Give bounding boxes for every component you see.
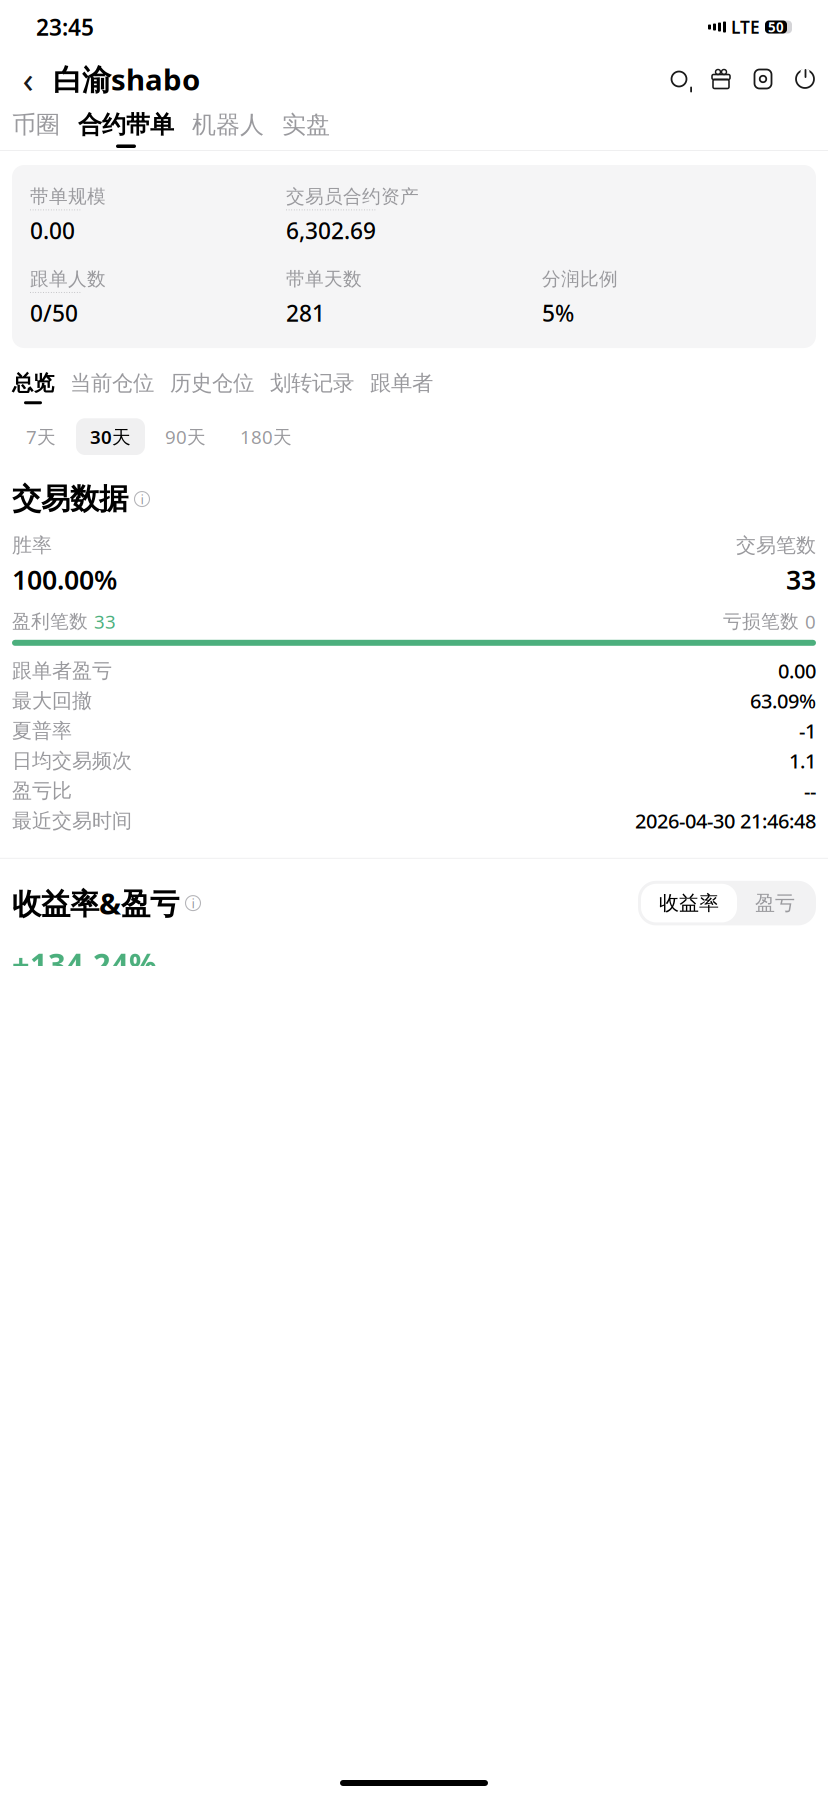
staticText: 最大回撤: [12, 688, 92, 713]
staticText: 100.00%: [12, 562, 117, 597]
staticText: 0.00: [30, 215, 75, 245]
staticText: 收益率: [659, 891, 719, 915]
button[interactable]: 机器人: [192, 110, 264, 148]
staticText: 带单天数: [286, 267, 362, 290]
staticText: 夏普率: [12, 718, 72, 743]
staticText: 总览: [12, 370, 54, 396]
button[interactable]: Rewards: [709, 67, 733, 91]
staticText: 交易笔数: [736, 533, 816, 558]
staticText: 收益率&盈亏: [12, 884, 179, 923]
staticText: 日均交易频次: [12, 748, 132, 773]
button[interactable]: 当前仓位: [70, 370, 154, 404]
staticText: +134.24%: [12, 943, 157, 984]
button[interactable]: 90天: [151, 418, 220, 455]
staticText: 5%: [542, 298, 574, 328]
staticText: 63.09%: [750, 688, 816, 714]
staticText: 33: [786, 562, 816, 597]
staticText: 33: [94, 609, 116, 634]
staticText: 盈亏比: [12, 778, 72, 803]
staticText: 23:45: [36, 12, 94, 42]
staticText: 盈利笔数: [12, 610, 94, 633]
button[interactable]: Search: [667, 67, 691, 91]
staticText: 币圈: [12, 110, 60, 139]
staticText: 最近交易时间: [12, 808, 132, 833]
button[interactable]: 合约带单: [78, 110, 174, 148]
staticText: ‹: [22, 55, 33, 103]
staticText: 0/50: [30, 298, 78, 328]
staticText: 当前仓位: [70, 370, 154, 396]
button[interactable]: 7天: [12, 418, 70, 455]
staticText: 白渝shabo: [53, 59, 200, 98]
staticText: 跟单者盈亏: [12, 658, 112, 683]
staticText: --: [804, 778, 816, 804]
staticText: 跟单人数: [30, 267, 106, 290]
staticText: 90天: [165, 424, 206, 449]
staticText: 盈亏: [755, 891, 795, 915]
staticText: i: [191, 894, 194, 912]
staticText: 实盘: [282, 110, 330, 139]
button[interactable]: Share: [793, 67, 817, 91]
staticText: 历史仓位: [170, 370, 254, 396]
staticText: 胜率: [12, 533, 52, 558]
button[interactable]: Back: [11, 57, 45, 101]
button[interactable]: 划转记录: [270, 370, 354, 404]
staticText: 180天: [240, 424, 292, 449]
staticText: 0: [805, 609, 816, 634]
staticText: 7天: [26, 424, 56, 449]
button[interactable]: 总览: [12, 370, 54, 404]
button[interactable]: 180天: [226, 418, 306, 455]
button[interactable]: 币圈: [12, 110, 60, 148]
staticText: 6,302.69: [286, 215, 376, 245]
staticText: 0.00: [778, 658, 816, 684]
staticText: 30天: [90, 424, 131, 449]
staticText: i: [140, 490, 143, 508]
staticText: 带单规模: [30, 185, 106, 208]
button[interactable]: 历史仓位: [170, 370, 254, 404]
button[interactable]: 30天: [76, 418, 145, 455]
staticText: 2026-04-30 21:46:48: [635, 808, 816, 834]
staticText: 合约带单: [78, 110, 174, 139]
staticText: 机器人: [192, 110, 264, 139]
staticText: 1.1: [789, 748, 816, 774]
staticText: 交易员合约资产: [286, 185, 419, 208]
staticText: 交易数据: [12, 481, 128, 517]
button[interactable]: Settings: [751, 67, 775, 91]
staticText: LTE: [731, 15, 760, 38]
staticText: 跟单者: [370, 370, 433, 396]
staticText: -1: [799, 718, 816, 744]
button[interactable]: 实盘: [282, 110, 330, 148]
staticText: 281: [286, 298, 325, 328]
staticText: 亏损笔数: [723, 610, 805, 633]
staticText: 50: [768, 18, 784, 36]
staticText: 分润比例: [542, 267, 618, 290]
button[interactable]: 跟单者: [370, 370, 433, 404]
button[interactable]: 盈亏: [737, 884, 813, 922]
button[interactable]: 收益率: [641, 884, 737, 922]
staticText: 划转记录: [270, 370, 354, 396]
